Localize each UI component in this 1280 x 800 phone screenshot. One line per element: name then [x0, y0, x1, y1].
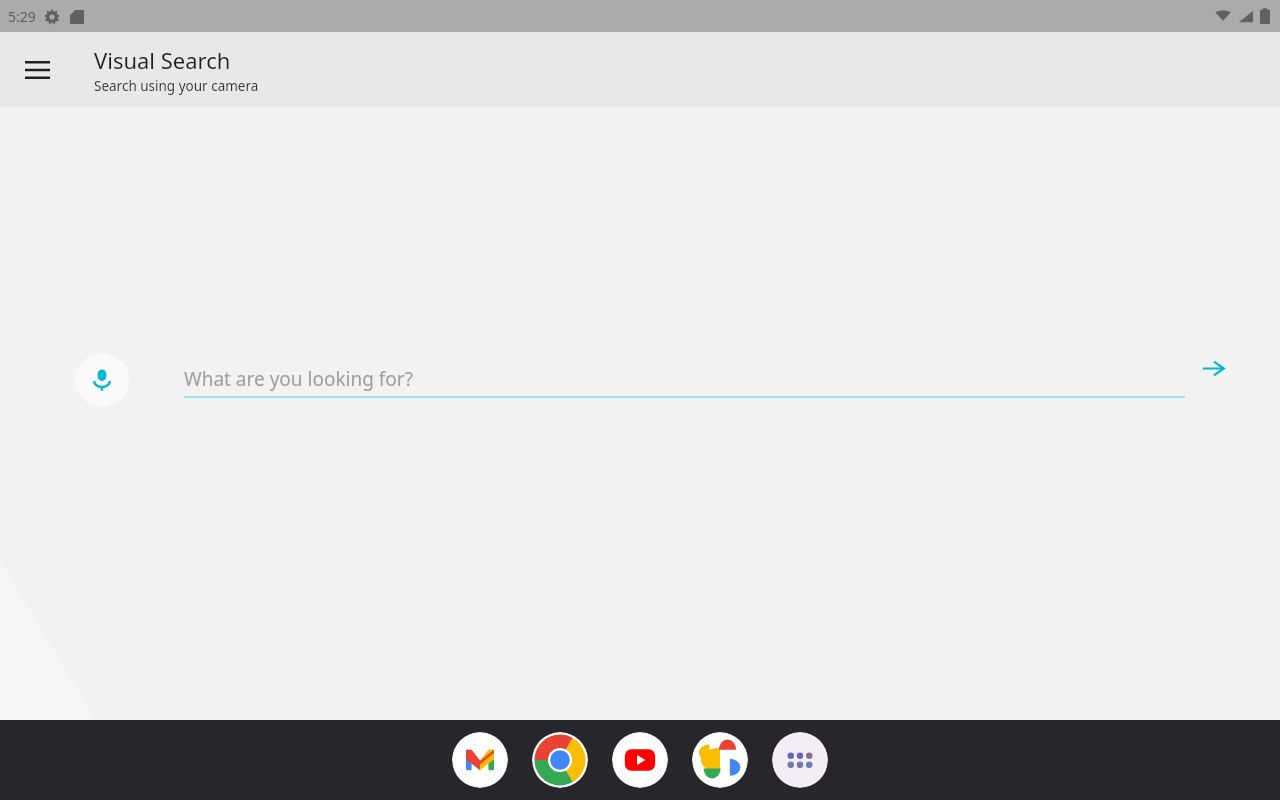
staticText: Search using your camera	[94, 77, 259, 95]
button[interactable]: Search	[1191, 346, 1235, 390]
button[interactable]: Open navigation menu	[13, 46, 61, 94]
staticText: Visual Search	[94, 45, 231, 75]
button[interactable]: Gmail	[452, 732, 508, 788]
button[interactable]: All apps	[772, 732, 828, 788]
staticText: 5:29	[8, 7, 36, 26]
button[interactable]: Google Photos	[692, 732, 748, 788]
button[interactable]: What are you looking for?	[184, 362, 1185, 396]
button[interactable]: Voice search	[75, 353, 129, 407]
button[interactable]: Chrome	[532, 732, 588, 788]
staticText: What are you looking for?	[184, 366, 413, 392]
button[interactable]: YouTube	[612, 732, 668, 788]
